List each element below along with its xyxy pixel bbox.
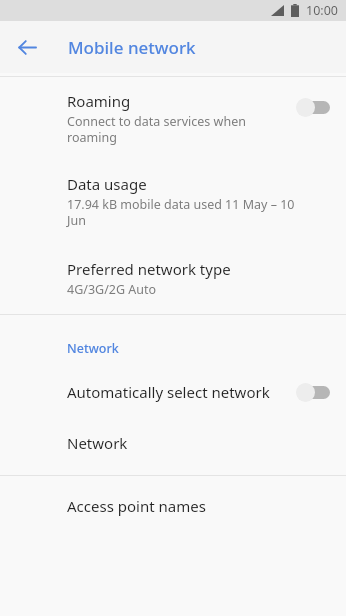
staticText: Data usage [67, 174, 147, 194]
staticText: Connect to data services when roaming [67, 113, 246, 146]
staticText: Network [67, 340, 119, 357]
staticText: 4G/3G/2G Auto [67, 281, 157, 298]
staticText: Access point names [67, 496, 206, 516]
button[interactable]: Network [0, 419, 346, 475]
staticText: 17.94 kB mobile data used 11 May – 10 Ju… [67, 196, 295, 229]
button[interactable]: Data usage [0, 166, 346, 251]
button[interactable]: Access point names [0, 476, 346, 538]
staticText: 10:00 [306, 2, 338, 19]
button[interactable]: Roaming [0, 77, 346, 166]
button[interactable]: Preferred network type [0, 251, 346, 314]
staticText: Roaming [67, 91, 131, 111]
button[interactable]: Automatically select network [0, 369, 346, 419]
staticText: Mobile network [68, 36, 196, 59]
staticText: Preferred network type [67, 259, 231, 279]
staticText: Network [67, 433, 128, 453]
staticText: Automatically select network [67, 382, 270, 402]
button[interactable]: Back [9, 29, 45, 65]
